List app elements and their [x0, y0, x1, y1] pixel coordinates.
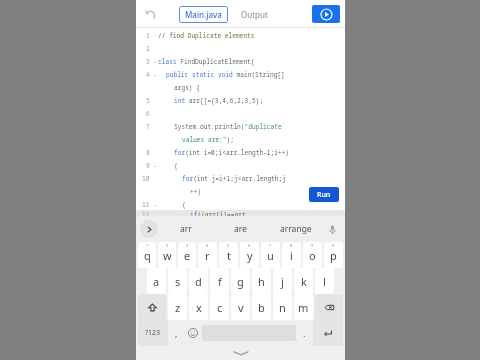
button[interactable]: j: [273, 268, 292, 294]
staticText: 7: [269, 243, 272, 248]
staticText: w: [163, 248, 172, 263]
staticText: Main.java: [185, 9, 222, 20]
staticText: v: [238, 300, 244, 315]
staticText: z: [175, 300, 181, 315]
button[interactable]: Period: [297, 320, 312, 346]
staticText: -: [154, 161, 156, 169]
button[interactable]: b: [252, 294, 271, 320]
staticText: a: [153, 274, 160, 289]
staticText: arrange: [280, 223, 312, 235]
button[interactable]: g: [231, 268, 250, 294]
staticText: 11: [142, 200, 150, 208]
button[interactable]: 1: [138, 242, 156, 268]
button[interactable]: 0: [324, 242, 343, 268]
button[interactable]: More suggestions: [140, 220, 158, 238]
button[interactable]: Enter: [313, 320, 343, 346]
button[interactable]: a: [147, 268, 166, 294]
button[interactable]: 7: [261, 242, 280, 268]
button[interactable]: Run: [309, 187, 339, 202]
staticText: 1: [146, 31, 150, 39]
button[interactable]: 6: [240, 242, 259, 268]
button[interactable]: Output: [241, 6, 268, 23]
button[interactable]: d: [189, 268, 208, 294]
staticText: e: [184, 248, 191, 263]
button[interactable]: 3: [178, 242, 196, 268]
button[interactable]: 8: [282, 242, 301, 268]
staticText: int arr[]={3,4,6,2,3,5};: [174, 96, 264, 104]
staticText: ,: [175, 327, 178, 339]
staticText: 3: [186, 243, 189, 248]
staticText: for(int j=i+1;j<arr.length;j: [182, 174, 286, 182]
staticText: 5: [146, 96, 150, 104]
staticText: c: [217, 300, 223, 315]
button[interactable]: Undo: [141, 4, 161, 24]
staticText: class FindDuplicatElement{: [158, 57, 255, 65]
button[interactable]: k: [294, 268, 313, 294]
button[interactable]: arrange: [268, 216, 323, 242]
staticText: 5: [227, 243, 230, 248]
staticText: are: [234, 223, 247, 235]
staticText: i: [290, 248, 293, 263]
button[interactable]: n: [273, 294, 292, 320]
button[interactable]: f: [210, 268, 229, 294]
button[interactable]: v: [231, 294, 250, 320]
staticText: 7: [146, 122, 150, 130]
staticText: {: [182, 200, 186, 208]
staticText: b: [258, 300, 265, 315]
staticText: 2: [166, 243, 169, 248]
button[interactable]: h: [252, 268, 271, 294]
staticText: values are:");: [182, 135, 234, 143]
button[interactable]: 4: [198, 242, 217, 268]
staticText: args) {: [174, 83, 200, 91]
button[interactable]: m: [294, 294, 313, 320]
staticText: if((arr[i]==arr: [190, 210, 246, 216]
staticText: 10: [142, 174, 150, 182]
button[interactable]: Shift: [138, 294, 166, 320]
staticText: System.out.println("duplicate: [174, 122, 282, 130]
button[interactable]: Main.java: [185, 6, 222, 23]
staticText: q: [144, 248, 151, 263]
button[interactable]: Emoji: [184, 320, 201, 346]
staticText: s: [175, 274, 181, 289]
staticText: 4: [146, 70, 150, 78]
staticText: Output: [241, 9, 268, 20]
button[interactable]: Voice input: [323, 220, 341, 238]
staticText: Run: [317, 190, 331, 200]
staticText: arr: [180, 223, 192, 235]
button[interactable]: x: [189, 294, 208, 320]
button[interactable]: arr: [158, 216, 213, 242]
staticText: 8: [290, 243, 293, 248]
staticText: r: [205, 248, 210, 263]
button[interactable]: c: [210, 294, 229, 320]
staticText: {: [174, 161, 178, 169]
staticText: y: [247, 248, 253, 263]
staticText: for(int i=0;i<arr.length-1;i++): [174, 148, 290, 156]
staticText: h: [258, 274, 265, 289]
staticText: 6: [248, 243, 251, 248]
staticText: j: [281, 274, 284, 289]
staticText: 9: [146, 161, 150, 169]
staticText: g: [237, 274, 244, 289]
button[interactable]: 9: [303, 242, 322, 268]
button[interactable]: z: [168, 294, 187, 320]
staticText: t: [227, 248, 231, 263]
button[interactable]: l: [315, 268, 334, 294]
staticText: 4: [206, 243, 209, 248]
button[interactable]: 2: [158, 242, 176, 268]
staticText: m: [298, 300, 309, 315]
staticText: public static void main(String[]: [166, 70, 285, 78]
button[interactable]: s: [168, 268, 187, 294]
button[interactable]: Run: [312, 5, 340, 23]
staticText: 9: [311, 243, 314, 248]
staticText: o: [309, 248, 316, 263]
button[interactable]: ?123: [138, 320, 168, 346]
staticText: .: [303, 327, 306, 339]
staticText: n: [279, 300, 286, 315]
staticText: 8: [146, 148, 150, 156]
staticText: k: [301, 274, 307, 289]
button[interactable]: are: [213, 216, 268, 242]
button[interactable]: Backspace: [315, 294, 343, 320]
button[interactable]: Comma: [169, 320, 184, 346]
button[interactable]: 5: [219, 242, 238, 268]
